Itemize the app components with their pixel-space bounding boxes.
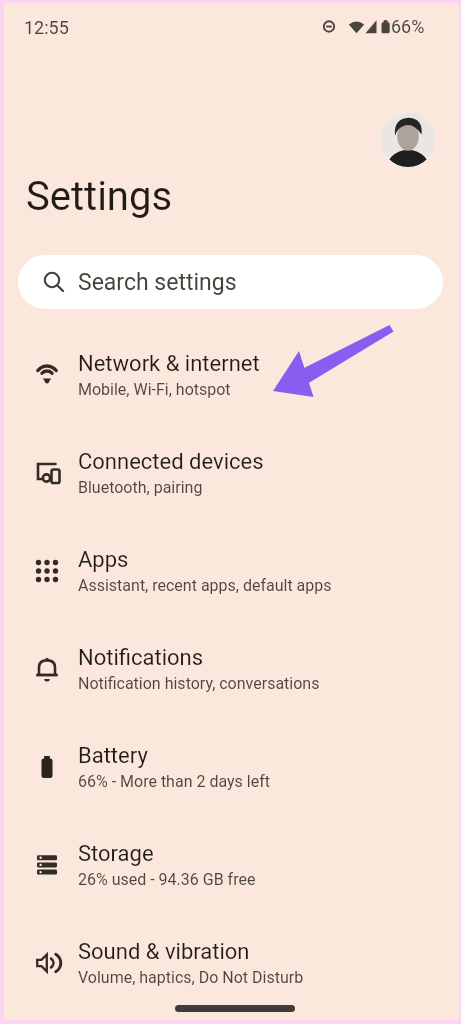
staticText: Notification history, conversations [78,674,320,693]
button[interactable] [381,113,435,167]
staticText: 12:55 [24,17,69,38]
staticText: Connected devices [78,449,264,475]
staticText: 66% - More than 2 days left [78,772,270,791]
staticText: Bluetooth, pairing [78,478,203,497]
staticText: Battery [78,743,148,769]
staticText: Apps [78,547,129,573]
staticText: 66% [391,16,425,37]
staticText: Mobile, Wi-Fi, hotspot [78,380,231,399]
staticText: Notifications [78,645,204,671]
staticText: Settings [26,173,173,220]
button[interactable]: Connected devices [4,424,459,522]
button[interactable]: Notifications [4,620,459,718]
staticText: Network & internet [78,351,260,377]
staticText: Sound & vibration [78,939,250,965]
staticText: Assistant, recent apps, default apps [78,576,332,595]
button[interactable]: Battery [4,718,459,816]
button[interactable]: Sound & vibration [4,914,459,1012]
staticText: Search settings [78,269,237,296]
staticText: 26% used - 94.36 GB free [78,870,256,889]
button[interactable]: Apps [4,522,459,620]
button[interactable]: Network & internet [4,326,459,424]
button[interactable]: Storage [4,816,459,914]
button[interactable]: Search settings [18,255,443,309]
staticText: Storage [78,841,154,867]
staticText: Volume, haptics, Do Not Disturb [78,968,304,987]
